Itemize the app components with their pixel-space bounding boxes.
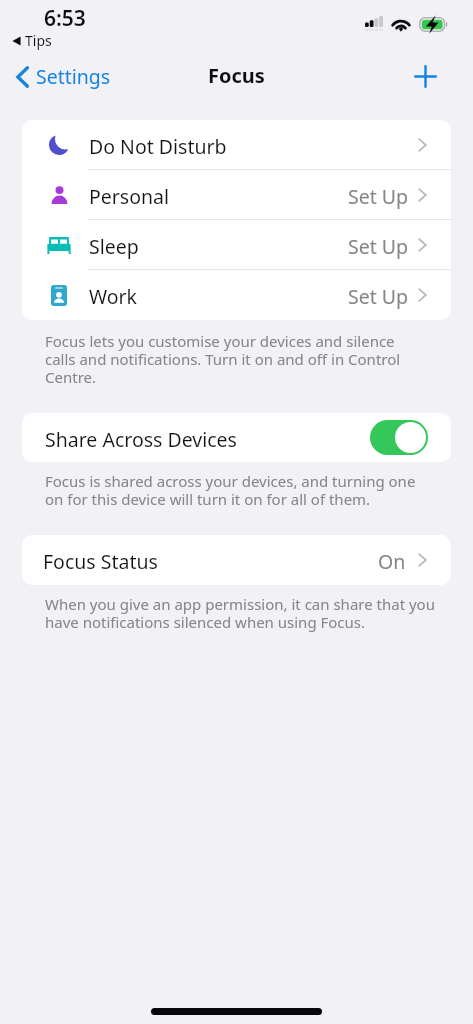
staticText: Settings (36, 63, 111, 90)
button[interactable]: Personal (22, 170, 451, 220)
staticText: Focus Status (43, 548, 158, 575)
button[interactable]: Sleep (22, 220, 451, 270)
staticText: Set Up (348, 283, 409, 310)
button[interactable]: Focus Status (22, 535, 451, 585)
staticText: Work (89, 283, 138, 310)
staticText: When you give an app permission, it can … (45, 594, 445, 633)
staticText: Focus lets you customise your devices an… (45, 331, 445, 388)
staticText: Set Up (348, 183, 409, 210)
staticText: On (378, 548, 406, 575)
staticText: Tips (25, 31, 52, 50)
button[interactable]: Share Across Devices (370, 420, 428, 455)
staticText: Do Not Disturb (89, 133, 227, 160)
staticText: Share Across Devices (45, 426, 237, 453)
staticText: Focus (208, 62, 265, 89)
button[interactable]: Do Not Disturb (22, 120, 451, 170)
button[interactable]: Work (22, 270, 451, 320)
button[interactable]: Add Focus (408, 59, 442, 93)
staticText: Personal (89, 183, 170, 210)
staticText: 6:53 (44, 4, 86, 33)
button[interactable]: Settings (12, 57, 115, 96)
staticText: Focus is shared across your devices, and… (45, 471, 445, 510)
staticText: Sleep (89, 233, 139, 260)
staticText: Set Up (348, 233, 409, 260)
button[interactable]: Share Across Devices (22, 413, 451, 462)
